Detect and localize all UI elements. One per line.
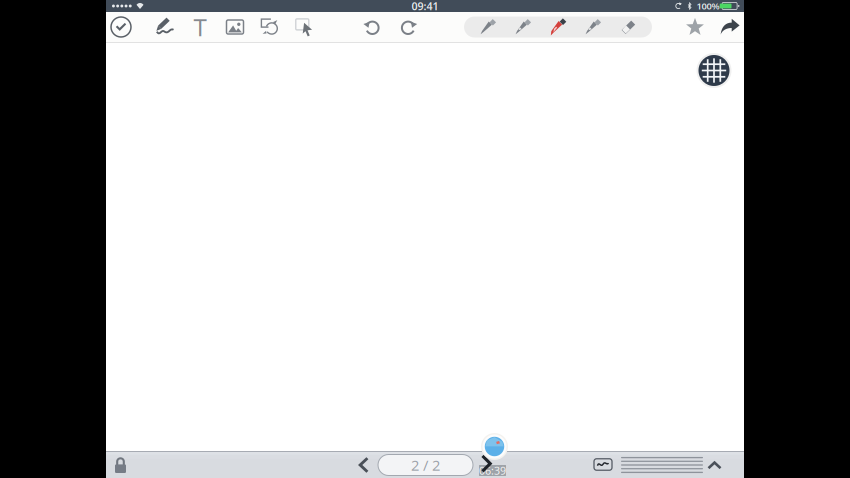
button[interactable]: Select [289,12,321,42]
button[interactable]: Redo [392,12,424,42]
button[interactable]: Favorite [679,12,711,42]
button[interactable]: Text [184,12,216,42]
button[interactable]: Undo [356,12,388,42]
button[interactable]: Share [714,12,746,42]
staticText: 06:39 [479,463,506,478]
button[interactable]: Pencil [470,16,505,37]
staticText: 09:41 [411,0,438,13]
button[interactable]: Insert image [219,12,251,42]
button[interactable]: Done [105,12,137,42]
button[interactable]: Highlighter [575,16,610,37]
button[interactable]: Recording [480,432,508,460]
button[interactable]: Next page [478,452,500,476]
button[interactable]: 2 / 2 [378,454,473,475]
staticText: 100% [697,0,720,12]
button[interactable]: Lasso cut [254,12,286,42]
button[interactable]: Eraser [610,16,645,37]
button[interactable]: Pen [149,12,181,42]
button[interactable]: Fountain pen [540,16,575,37]
button[interactable]: Expand [703,455,725,475]
button[interactable]: Page thumbnails [696,52,732,88]
button[interactable]: Pen [505,16,540,37]
staticText: 2 / 2 [411,455,440,475]
staticText: T [193,11,206,43]
button[interactable]: Previous page [351,453,375,477]
button[interactable]: Audio waveform [591,454,615,474]
button[interactable]: Lock [108,453,132,477]
